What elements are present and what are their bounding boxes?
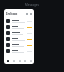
staticText: Inbox xyxy=(6,11,18,16)
staticText: Messages xyxy=(25,3,39,7)
button[interactable] xyxy=(4,48,34,54)
button[interactable]: Tab xyxy=(11,58,16,63)
button[interactable] xyxy=(4,30,34,36)
button[interactable]: Tab xyxy=(28,58,33,63)
button[interactable]: Tab xyxy=(22,58,27,63)
button[interactable]: Tab xyxy=(17,58,22,63)
button[interactable]: More xyxy=(29,12,33,16)
button[interactable]: Search xyxy=(25,12,29,16)
button[interactable]: Tab xyxy=(5,58,10,63)
button[interactable] xyxy=(4,36,34,42)
button[interactable] xyxy=(4,18,34,24)
button[interactable] xyxy=(4,42,34,48)
button[interactable] xyxy=(4,24,34,30)
